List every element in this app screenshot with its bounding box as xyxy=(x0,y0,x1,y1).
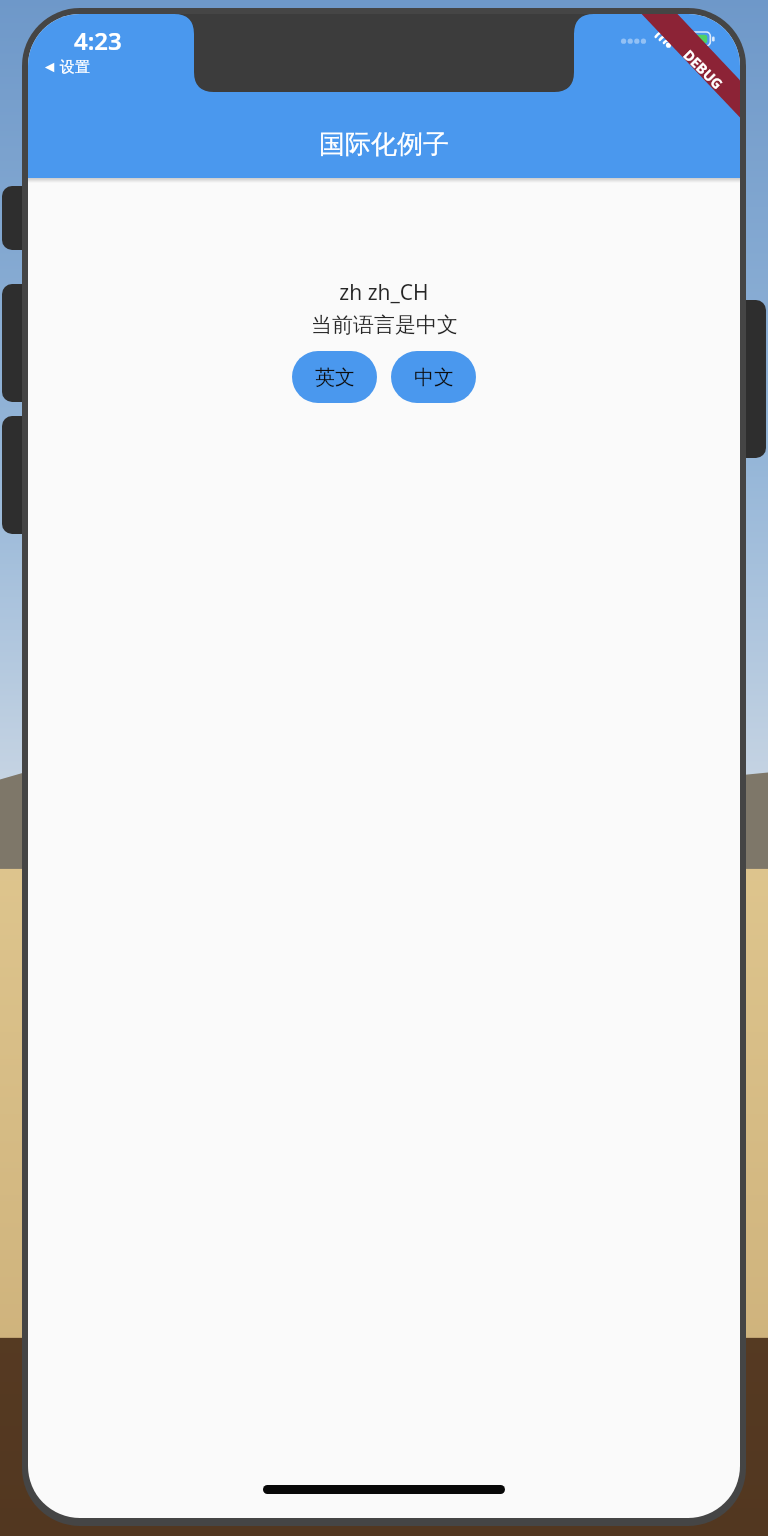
button[interactable]: 英文 xyxy=(292,351,377,403)
button[interactable]: 设置 xyxy=(40,56,94,79)
staticText: 4:23 xyxy=(74,24,122,57)
staticText: 国际化例子 xyxy=(319,128,449,161)
staticText: 设置 xyxy=(60,58,90,77)
staticText: 英文 xyxy=(315,365,355,390)
staticText: 当前语言是中文 xyxy=(311,312,458,338)
staticText: zh zh_CH xyxy=(339,278,429,307)
staticText: DEBUG xyxy=(679,45,728,94)
staticText: 中文 xyxy=(414,365,454,390)
other: Wi-Fi xyxy=(657,30,680,47)
other: Battery xyxy=(688,32,714,46)
button[interactable]: 中文 xyxy=(391,351,476,403)
